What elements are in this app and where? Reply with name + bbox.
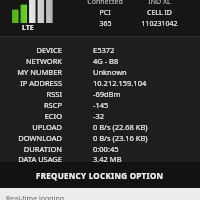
staticText: RSSI (46, 89, 62, 99)
button[interactable]: NETWORK (0, 55, 200, 66)
staticText: -32 (93, 111, 104, 121)
staticText: 0 B/s (22.68 KB) (93, 122, 148, 132)
staticText: Real-time logging (6, 194, 65, 200)
button[interactable]: IP ADDRESS (0, 77, 200, 88)
staticText: 110231042 (141, 19, 178, 29)
staticText: ECIO (44, 111, 62, 121)
button[interactable]: DURATION (0, 143, 200, 154)
staticText: LTE (22, 23, 34, 33)
staticText: 0:00:45 (93, 144, 119, 154)
staticText: E5372 (93, 45, 115, 55)
staticText: FREQUENCY LOCKING OPTION (36, 170, 164, 181)
staticText: -69dBm (93, 89, 121, 99)
staticText: UPLOAD (32, 122, 62, 132)
staticText: RSCP (43, 100, 62, 110)
button[interactable]: DEVICE (0, 44, 200, 55)
staticText: DOWNLOAD (18, 133, 62, 143)
staticText: PCI (99, 8, 111, 18)
staticText: CELL ID (147, 8, 172, 18)
staticText: MY NUMBER (17, 67, 62, 77)
staticText: IP ADDRESS (20, 78, 62, 88)
button[interactable]: ECIO (0, 110, 200, 121)
staticText: Unknown (93, 67, 127, 77)
button[interactable]: Signal strength LTE (10, 0, 62, 36)
staticText: NETWORK (25, 56, 62, 66)
button[interactable]: DOWNLOAD (0, 132, 200, 143)
staticText: DATA USAGE (18, 154, 62, 162)
staticText: DURATION (23, 144, 62, 154)
button[interactable]: Connected (74, 0, 136, 30)
staticText: 4G - B8 (93, 56, 119, 66)
staticText: DEVICE (36, 45, 62, 55)
button[interactable]: DATA USAGE (0, 154, 200, 162)
staticText: 10.212.159.104 (93, 78, 147, 88)
button[interactable]: IND XL (124, 0, 194, 30)
staticText: 365 (99, 19, 112, 29)
staticText: 0 B/s (23.16 KB) (93, 133, 148, 143)
button[interactable]: RSCP (0, 99, 200, 110)
staticText: Connected (87, 0, 123, 7)
button[interactable]: UPLOAD (0, 121, 200, 132)
staticText: IND XL (148, 0, 171, 7)
button[interactable]: FREQUENCY LOCKING OPTION (0, 162, 200, 188)
button[interactable]: RSSI (0, 88, 200, 99)
staticText: -145 (93, 100, 109, 110)
button[interactable]: MY NUMBER (0, 66, 200, 77)
staticText: 3.42 MB (93, 154, 122, 162)
